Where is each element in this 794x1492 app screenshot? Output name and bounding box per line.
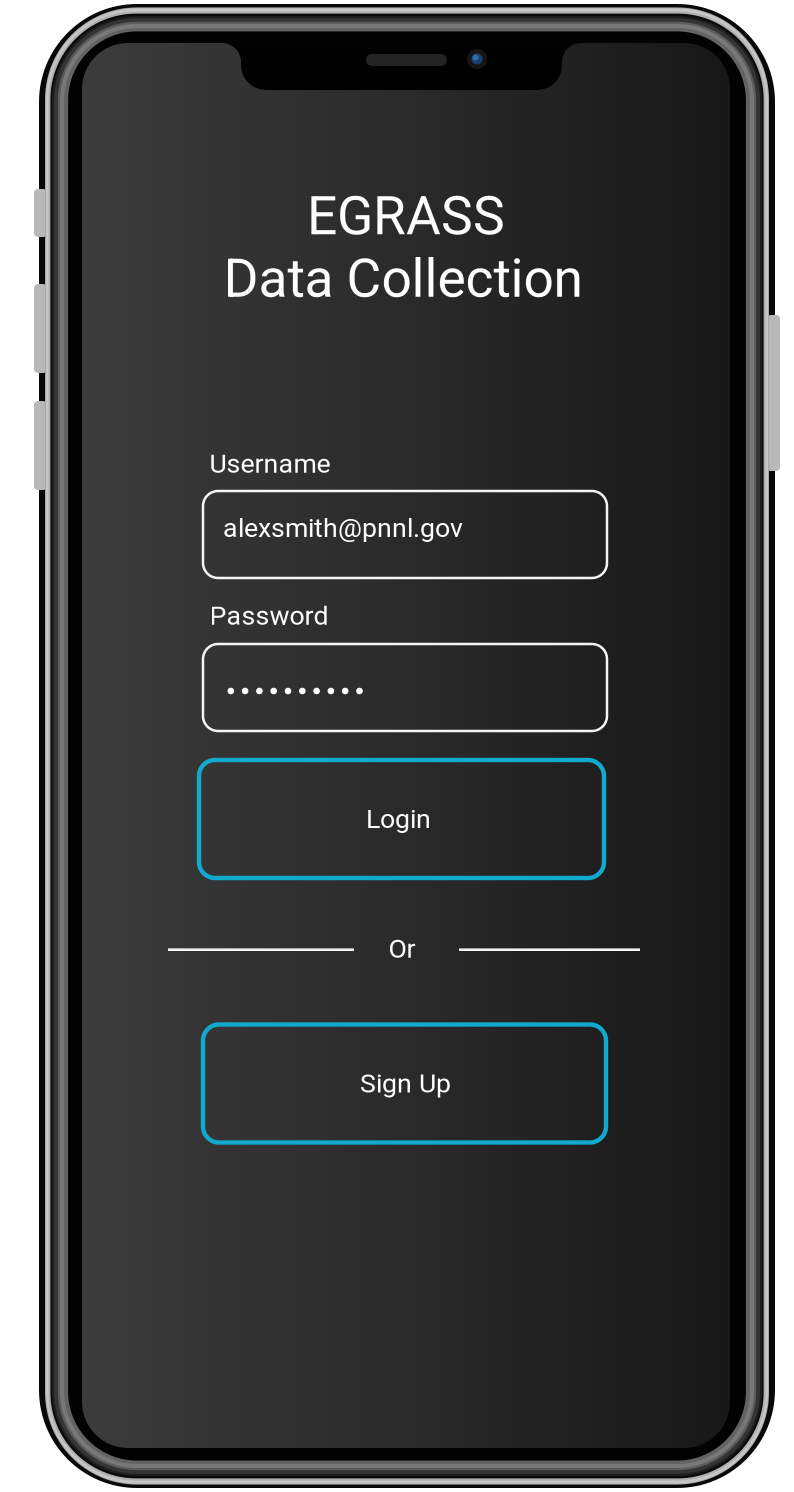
staticText: Or <box>388 933 415 964</box>
staticText: Username <box>209 448 330 479</box>
staticText: Password <box>209 600 328 631</box>
staticText: EGRASS <box>307 185 505 247</box>
staticText: Data Collection <box>223 247 582 310</box>
button[interactable]: Login <box>199 760 604 878</box>
button[interactable]: Sign Up <box>203 1024 606 1142</box>
button[interactable] <box>203 644 607 731</box>
button[interactable]: alexsmith@pnnl.gov <box>203 491 607 578</box>
staticText: Sign Up <box>360 1068 451 1099</box>
staticText: alexsmith@pnnl.gov <box>223 512 463 544</box>
staticText: Login <box>366 803 431 835</box>
